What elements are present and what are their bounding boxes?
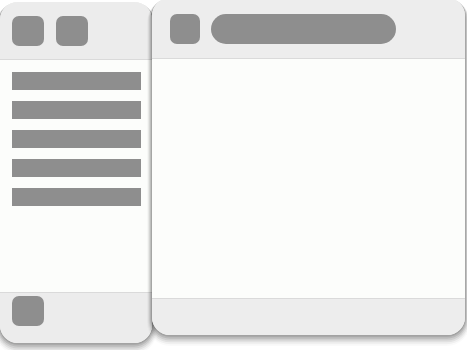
button[interactable]: Menu bbox=[12, 16, 44, 46]
button[interactable]: Navigation drawer bbox=[170, 14, 200, 44]
button[interactable]: Add bbox=[12, 296, 44, 326]
button[interactable]: Search bbox=[211, 14, 396, 44]
button[interactable]: Search bbox=[56, 16, 88, 46]
